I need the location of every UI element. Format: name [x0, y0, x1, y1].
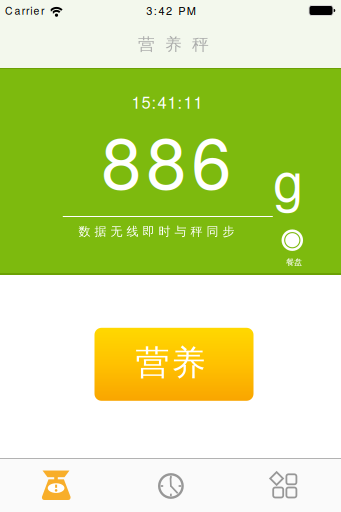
button[interactable]: 秤 — [0, 459, 114, 512]
staticText: r — [22, 3, 25, 18]
staticText: 15:41:11 — [132, 90, 203, 113]
button[interactable]: 历史 — [114, 459, 227, 512]
staticText: 3 — [146, 2, 152, 18]
staticText: 2 — [166, 2, 172, 18]
staticText: g — [273, 141, 302, 217]
button[interactable]: 餐盘 — [278, 223, 307, 265]
staticText: r — [41, 3, 44, 18]
staticText: i — [30, 3, 32, 18]
staticText: 4 — [158, 2, 164, 18]
staticText: 营养秤 — [138, 34, 209, 55]
staticText: a — [14, 3, 20, 18]
staticText: 营养 — [136, 341, 206, 384]
staticText: C — [5, 3, 13, 18]
staticText: P — [178, 2, 185, 18]
staticText: 数 据 无 线 即 时 与 秤 同 步 — [78, 224, 234, 239]
staticText: 886 — [101, 107, 231, 210]
staticText: : — [154, 2, 157, 18]
staticText: 餐盘 — [286, 257, 302, 268]
staticText: e — [34, 3, 40, 18]
staticText: M — [187, 2, 196, 18]
staticText: r — [26, 3, 29, 18]
button[interactable]: 更多 — [227, 459, 341, 512]
button[interactable]: 营养 — [94, 328, 253, 401]
